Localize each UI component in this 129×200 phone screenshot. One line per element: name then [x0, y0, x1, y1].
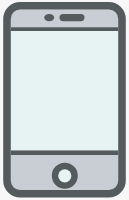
button[interactable]: Smartphone — [0, 0, 129, 200]
